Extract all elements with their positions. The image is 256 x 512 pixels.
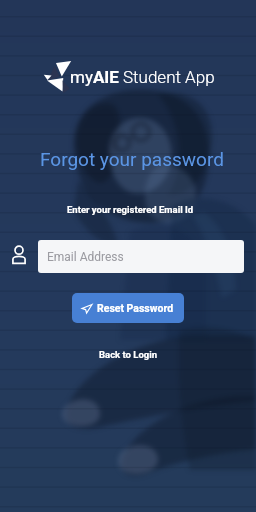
staticText: myAIE Student App	[70, 67, 215, 87]
button[interactable]: Email Address	[38, 240, 244, 273]
staticText: Enter your registered Email Id	[67, 204, 194, 215]
button[interactable]: Reset Password	[72, 293, 184, 323]
other: Account	[11, 245, 27, 265]
staticText: Forgot your password	[40, 148, 224, 170]
staticText: Reset Password	[97, 302, 174, 314]
staticText: Email Address	[47, 250, 124, 264]
button[interactable]: Back to Login	[94, 345, 162, 363]
staticText: Back to Login	[99, 349, 158, 360]
